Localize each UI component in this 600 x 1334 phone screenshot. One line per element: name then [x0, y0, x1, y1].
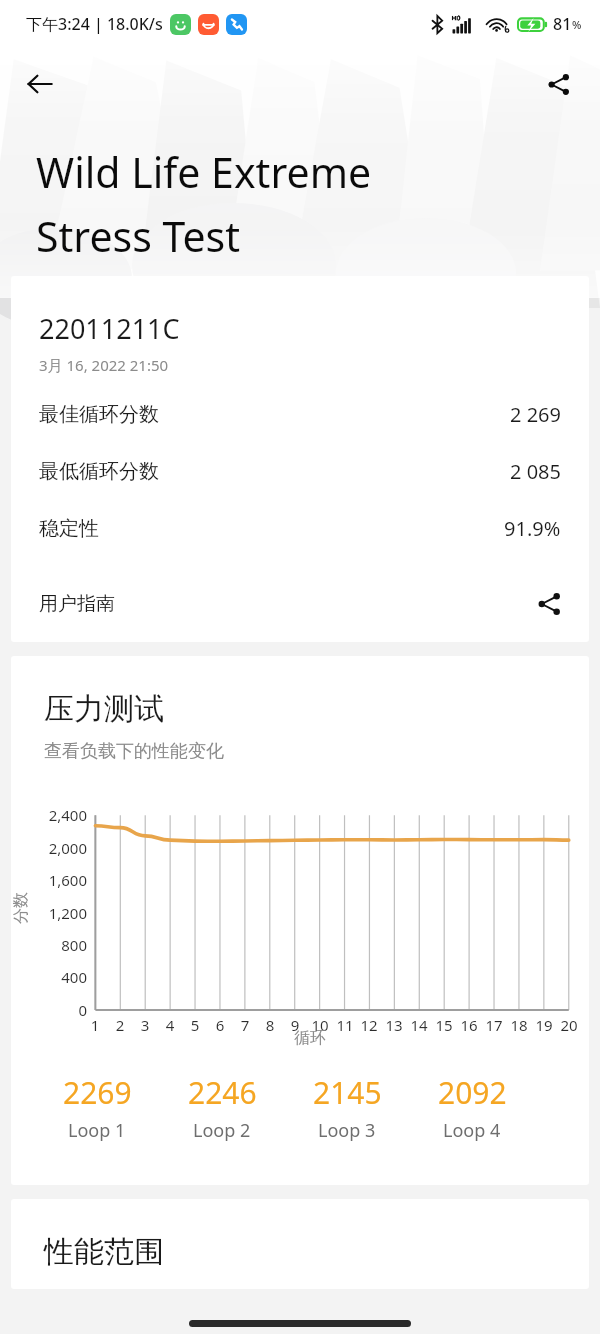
staticText: 2 085	[510, 458, 561, 485]
staticText: 20	[558, 1015, 580, 1035]
staticText: 2145	[313, 1072, 382, 1113]
staticText: 19	[533, 1015, 555, 1035]
button[interactable]: 用户指南	[39, 580, 561, 628]
staticText: 查看负载下的性能变化	[44, 740, 224, 763]
staticText: 5	[184, 1015, 206, 1035]
staticText: 12	[358, 1015, 380, 1035]
staticText: 15	[433, 1015, 455, 1035]
staticText: 3月 16, 2022 21:50	[39, 355, 169, 375]
staticText: 压力测试	[44, 690, 164, 728]
staticText: 800	[25, 935, 87, 955]
staticText: 4	[159, 1015, 181, 1035]
button[interactable]: 2269	[45, 1055, 149, 1159]
staticText: 稳定性	[39, 516, 99, 541]
staticText: 2,000	[25, 838, 87, 858]
staticText: 1,200	[25, 903, 87, 923]
staticText: 下午3:24 | 18.0K/s	[26, 13, 163, 35]
staticText: 18	[508, 1015, 530, 1035]
staticText: Loop 3	[318, 1118, 376, 1143]
staticText: 0	[25, 1000, 87, 1020]
staticText: Loop 1	[68, 1118, 126, 1143]
staticText: 22011211C	[39, 310, 180, 347]
staticText: 8	[259, 1015, 281, 1035]
staticText: 2246	[188, 1072, 257, 1113]
staticText: 3	[134, 1015, 156, 1035]
staticText: 用户指南	[39, 592, 115, 616]
staticText: 2	[109, 1015, 131, 1035]
staticText: 分数	[11, 892, 31, 924]
button[interactable]: 2145	[295, 1055, 399, 1159]
staticText: 10	[309, 1015, 331, 1035]
staticText: 2,400	[25, 805, 87, 825]
button[interactable]: Share	[532, 58, 584, 110]
staticText: 13	[383, 1015, 405, 1035]
staticText: 循环	[294, 1028, 326, 1048]
button[interactable]: Back	[14, 58, 66, 110]
staticText: 2092	[438, 1072, 507, 1113]
staticText: 7	[234, 1015, 256, 1035]
staticText: 400	[25, 967, 87, 987]
staticText: Wild Life Extreme	[36, 144, 372, 200]
button[interactable]: 2092	[420, 1055, 524, 1159]
staticText: 最佳循环分数	[39, 402, 159, 427]
staticText: 16	[458, 1015, 480, 1035]
staticText: %	[572, 17, 582, 32]
button[interactable]: 2246	[170, 1055, 274, 1159]
staticText: Stress Test	[36, 208, 240, 264]
staticText: 最低循环分数	[39, 459, 159, 484]
staticText: 81	[553, 13, 572, 35]
staticText: 11	[334, 1015, 356, 1035]
staticText: 17	[483, 1015, 505, 1035]
staticText: 14	[408, 1015, 430, 1035]
staticText: 2 269	[510, 401, 561, 428]
staticText: Loop 4	[443, 1118, 501, 1143]
staticText: 性能范围	[44, 1233, 164, 1271]
staticText: Loop 2	[193, 1118, 251, 1143]
staticText: 2269	[63, 1072, 132, 1113]
staticText: 1,600	[25, 870, 87, 890]
staticText: 6	[209, 1015, 231, 1035]
staticText: 9	[284, 1015, 306, 1035]
staticText: 91.9%	[504, 515, 561, 542]
staticText: 1	[84, 1015, 106, 1035]
